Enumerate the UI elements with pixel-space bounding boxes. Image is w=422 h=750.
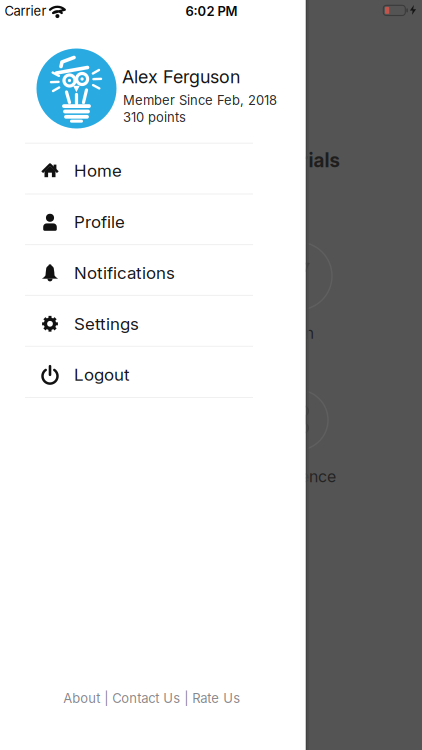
staticText: Home — [74, 161, 122, 181]
staticText: n — [305, 323, 314, 342]
staticText: Contact Us — [112, 691, 180, 706]
staticText: Member Since Feb, 2018 — [123, 92, 277, 108]
staticText: About — [63, 691, 100, 706]
button[interactable]: Rate Us — [192, 691, 240, 706]
staticText: 6:02 PM — [186, 3, 238, 19]
staticText: rials — [300, 149, 339, 171]
staticText: Carrier — [4, 3, 46, 19]
button[interactable]: Notifications — [0, 248, 281, 298]
staticText: ence — [300, 467, 336, 486]
button[interactable]: About — [63, 691, 100, 706]
button[interactable]: Logout — [0, 350, 281, 400]
staticText: Notifications — [74, 263, 175, 283]
staticText: Rate Us — [192, 691, 240, 706]
button[interactable]: Profile — [0, 197, 281, 247]
staticText: Alex Ferguson — [122, 66, 240, 87]
staticText: Profile — [74, 212, 125, 232]
staticText: Settings — [74, 314, 139, 334]
staticText: Logout — [74, 365, 130, 385]
staticText: | — [100, 691, 112, 706]
button[interactable]: Contact Us — [112, 691, 180, 706]
button[interactable]: Home — [0, 146, 281, 196]
button[interactable]: Profile photo — [36, 48, 116, 128]
staticText: | — [180, 691, 192, 706]
button[interactable]: Settings — [0, 299, 281, 349]
staticText: 310 points — [123, 109, 186, 125]
